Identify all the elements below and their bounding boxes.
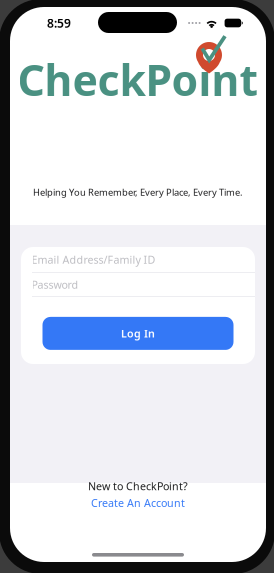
button[interactable]: Create An Account <box>91 496 185 510</box>
button[interactable]: Log In <box>42 317 233 350</box>
staticText: Log In <box>121 326 155 340</box>
staticText: 8:59 <box>47 15 71 31</box>
staticText: New to CheckPoint? <box>88 479 188 493</box>
staticText: Password <box>31 277 78 292</box>
staticText: Email Address/Family ID <box>31 252 155 267</box>
staticText: Create An Account <box>91 496 185 510</box>
staticText: CheckPoint <box>17 51 258 108</box>
button[interactable]: Email Address/Family ID <box>21 247 255 272</box>
button[interactable]: Password <box>21 273 255 296</box>
staticText: Helping You Remember, Every Place, Every… <box>33 186 243 198</box>
